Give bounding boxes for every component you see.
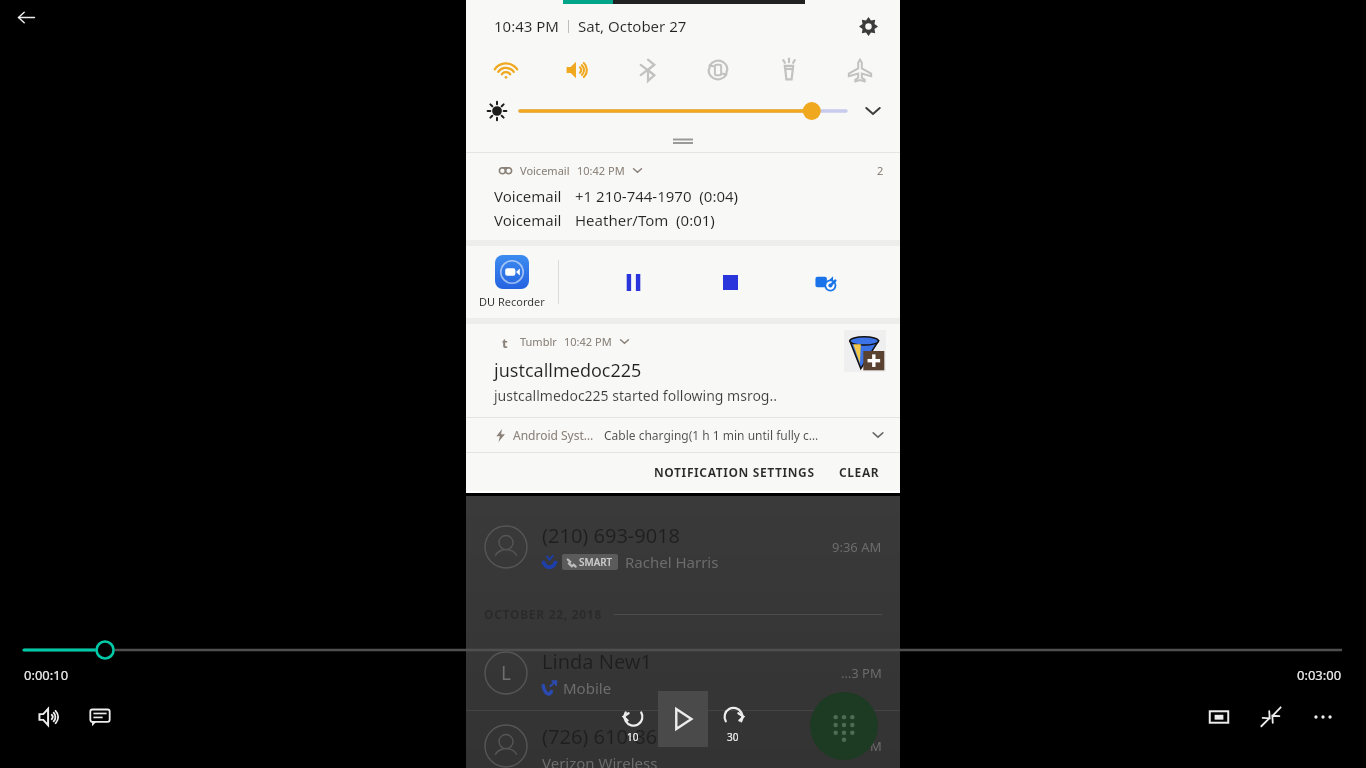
button[interactable]: Flashlight (769, 50, 809, 90)
staticText: Verizon Wireless (542, 753, 658, 768)
staticText: Android Syst… (513, 427, 594, 443)
button[interactable]: Stop recording (707, 259, 753, 305)
staticText: justcallmedoc225 (494, 358, 642, 383)
staticText: 2 (877, 163, 884, 178)
button[interactable]: Sound (557, 50, 597, 90)
staticText: Voicemail (520, 163, 570, 178)
button[interactable]: NOTIFICATION SETTINGS (640, 456, 829, 488)
staticText: Rachel Harris (625, 552, 719, 572)
staticText: Voicemail (494, 210, 562, 230)
button[interactable]: t (466, 324, 900, 417)
staticText: CLEAR (839, 464, 880, 480)
button[interactable]: More options (1300, 696, 1346, 738)
staticText: Mobile (563, 678, 612, 698)
button[interactable]: Seek bar (24, 638, 1342, 662)
button[interactable]: Picture in picture (1196, 696, 1242, 738)
staticText: 0:00:10 (24, 666, 69, 684)
button[interactable]: Brightness (520, 99, 846, 123)
button[interactable]: Open dialpad (810, 692, 878, 760)
staticText: NOTIFICATION SETTINGS (654, 464, 815, 480)
staticText: 10 (627, 730, 639, 744)
button[interactable]: Rewind 10 seconds (608, 694, 658, 744)
staticText: Cable charging(1 h 1 min until fully c… (604, 427, 819, 443)
staticText: +1 210-744-1970 (0:04) (575, 186, 739, 206)
staticText: 3:03 PM (833, 737, 882, 755)
staticText: t (502, 334, 508, 348)
button[interactable]: Recorder settings (803, 259, 849, 305)
button[interactable]: Bluetooth (628, 50, 668, 90)
button[interactable]: DU Recorder (466, 246, 900, 318)
staticText: SMART (579, 555, 613, 569)
button[interactable]: (210) 693-9018 (466, 510, 900, 584)
staticText: Voicemail (494, 186, 562, 206)
staticText: Heather/Tom (0:01) (575, 210, 715, 230)
staticText: 10:42 PM (577, 163, 625, 178)
button[interactable]: Airplane mode (840, 50, 880, 90)
button[interactable]: Play (658, 691, 708, 747)
staticText: 10:42 PM (564, 334, 612, 349)
button[interactable]: Pause recording (610, 259, 656, 305)
button[interactable]: Forward 30 seconds (708, 694, 758, 744)
button[interactable]: Exit fullscreen (1248, 696, 1294, 738)
staticText: 9:36 AM (832, 538, 882, 556)
button[interactable]: Expand quick settings (858, 96, 888, 126)
staticText: (726) 610-8623 (542, 723, 681, 750)
button[interactable]: Android Syst… (466, 418, 900, 452)
staticText: Tumblr (520, 334, 557, 349)
staticText: (210) 693-9018 (542, 522, 681, 549)
staticText: 30 (727, 730, 739, 744)
staticText: L (501, 660, 511, 686)
staticText: DU Recorder (479, 294, 545, 309)
button[interactable]: Auto rotate (698, 50, 738, 90)
button[interactable]: (726) 610-8623 (466, 723, 900, 768)
staticText: 10:43 PM (494, 16, 559, 36)
button[interactable]: Voicemail (466, 153, 900, 240)
button[interactable]: Subtitles (76, 696, 124, 738)
button[interactable]: Back (6, 0, 46, 34)
button[interactable]: Volume (26, 696, 74, 738)
staticText: 0:03:00 (1297, 666, 1342, 684)
button[interactable]: Wi-Fi (486, 50, 526, 90)
staticText: …3 PM (841, 664, 882, 682)
staticText: Linda New1 (542, 648, 652, 675)
button[interactable]: Settings (852, 10, 884, 42)
button[interactable]: L (466, 636, 900, 710)
staticText: justcallmedoc225 started following msrog… (494, 386, 777, 405)
staticText: OCTOBER 22, 2018 (484, 606, 602, 622)
staticText: Sat, October 27 (578, 16, 687, 36)
button[interactable]: CLEAR (829, 456, 900, 488)
